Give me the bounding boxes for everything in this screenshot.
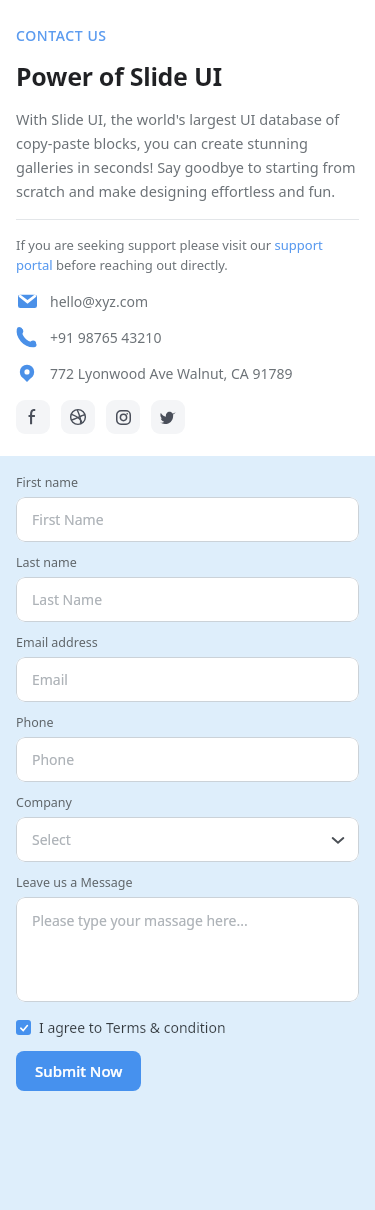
staticText: Company (16, 794, 72, 811)
staticText: Phone (16, 714, 54, 731)
staticText: Email (32, 670, 68, 689)
button[interactable]: Last Name (16, 577, 359, 622)
staticText: With Slide UI, the world's largest UI da… (16, 109, 359, 201)
button[interactable]: I agree to Terms & condition (16, 1018, 226, 1037)
staticText: If you are seeking support please visit … (16, 236, 359, 274)
button[interactable]: Call +91 98765 43210 (0, 324, 375, 350)
button[interactable]: Twitter (151, 400, 185, 434)
button[interactable]: Select (16, 817, 359, 862)
staticText: Last name (16, 554, 77, 571)
button[interactable]: Facebook (16, 400, 50, 434)
staticText: CONTACT US (16, 26, 107, 45)
button[interactable]: Please type your massage here... (16, 897, 359, 1002)
staticText: First Name (32, 510, 104, 529)
staticText: Submit Now (35, 1061, 123, 1081)
staticText: Power of Slide UI (16, 59, 222, 93)
button[interactable]: Email (16, 657, 359, 702)
button[interactable]: Address (0, 360, 375, 386)
other: Address (16, 362, 38, 384)
staticText: First name (16, 474, 79, 491)
button[interactable]: Submit Now (16, 1051, 141, 1091)
button[interactable]: Instagram (106, 400, 140, 434)
staticText: +91 98765 43210 (50, 328, 162, 347)
staticText: Leave us a Message (16, 874, 133, 891)
staticText: Email address (16, 634, 98, 651)
button[interactable]: Phone (16, 737, 359, 782)
button[interactable]: Email hello@xyz.com (0, 288, 375, 314)
staticText: Please type your massage here... (32, 911, 248, 930)
other: Call +91 98765 43210 (16, 326, 38, 348)
other: Email hello@xyz.com (16, 290, 38, 312)
staticText: hello@xyz.com (50, 292, 148, 311)
button[interactable]: Dribbble (61, 400, 95, 434)
button[interactable]: First Name (16, 497, 359, 542)
staticText: 772 Lyonwood Ave Walnut, CA 91789 (50, 364, 293, 383)
staticText: Select (32, 830, 71, 849)
staticText: I agree to Terms & condition (39, 1018, 226, 1037)
staticText: Last Name (32, 590, 103, 609)
staticText: Phone (32, 750, 75, 769)
